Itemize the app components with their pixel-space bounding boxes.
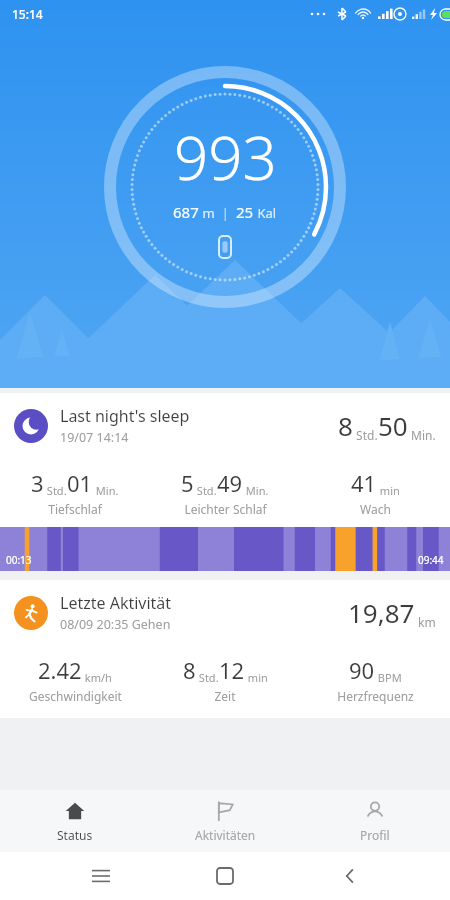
staticText: 687 — [173, 202, 199, 222]
staticText: min — [377, 483, 400, 498]
staticText: 993 — [174, 116, 277, 198]
button[interactable]: Profil — [300, 790, 450, 852]
button[interactable]: Status — [0, 790, 150, 852]
button[interactable]: Recents — [77, 852, 125, 900]
staticText: 19,87 — [348, 595, 415, 630]
staticText: 8 — [183, 655, 196, 685]
staticText: 3 — [31, 468, 44, 498]
staticText: km — [415, 614, 436, 630]
staticText: 5 — [181, 468, 194, 498]
staticText: Status — [57, 827, 93, 843]
other: Band — [219, 236, 231, 258]
staticText: 25 — [236, 202, 254, 222]
staticText: Zeit — [214, 688, 236, 704]
staticText: BPM — [375, 670, 402, 685]
staticText: Wach — [360, 501, 391, 517]
staticText: Std. — [194, 483, 217, 498]
staticText: km/h — [82, 670, 112, 685]
staticText: 49 — [217, 468, 243, 498]
staticText: Min. — [93, 483, 119, 498]
staticText: 12 — [219, 655, 245, 685]
staticText: 19/07 14:14 — [60, 429, 129, 446]
button[interactable]: Aktivitäten — [150, 790, 300, 852]
staticText: Last night's sleep — [60, 405, 190, 427]
button[interactable]: Back — [326, 852, 374, 900]
staticText: m — [199, 204, 215, 222]
staticText: Min. — [408, 427, 436, 443]
staticText: 2.42 — [38, 655, 82, 685]
staticText: Std. — [353, 427, 378, 443]
staticText: Profil — [360, 827, 390, 843]
staticText: Std. — [44, 483, 67, 498]
staticText: 90 — [349, 655, 375, 685]
staticText: Leichter Schlaf — [184, 501, 267, 517]
staticText: 09:44 — [418, 553, 444, 567]
staticText: 00:13 — [6, 553, 32, 567]
button[interactable]: Letzte Aktivität — [0, 580, 450, 718]
staticText: 15:14 — [12, 6, 43, 22]
staticText: Letzte Aktivität — [60, 592, 172, 614]
button[interactable]: Home — [201, 852, 249, 900]
staticText: Std. — [196, 670, 219, 685]
staticText: Herzfrequenz — [337, 688, 414, 704]
staticText: 41 — [351, 468, 377, 498]
staticText: Min. — [243, 483, 269, 498]
staticText: Aktivitäten — [195, 827, 256, 843]
staticText: 08/09 20:35 Gehen — [60, 616, 171, 633]
staticText: min — [245, 670, 268, 685]
staticText: 01 — [67, 468, 93, 498]
staticText: 8 — [338, 408, 353, 443]
staticText: Kal — [254, 204, 277, 222]
staticText: | — [215, 204, 236, 222]
staticText: Geschwindigkeit — [29, 688, 122, 704]
staticText: Tiefschlaf — [48, 501, 102, 517]
button[interactable]: Last night's sleep — [0, 393, 450, 571]
staticText: 50 — [378, 408, 408, 443]
